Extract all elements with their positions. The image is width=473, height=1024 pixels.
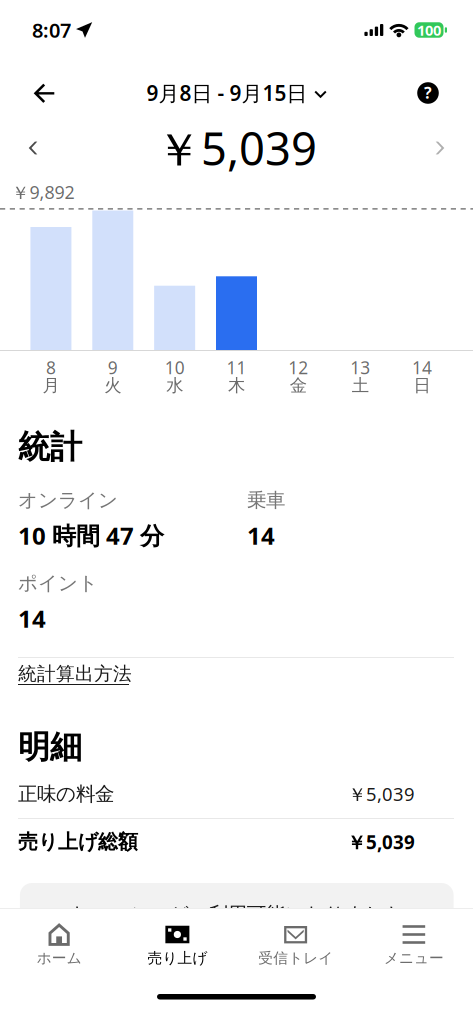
staticText: 明細 — [18, 727, 82, 767]
staticText: 14 — [247, 519, 275, 552]
button[interactable]: 統計算出方法 — [18, 662, 132, 685]
staticText: 14 — [18, 602, 46, 635]
staticText: ￥5,039 — [347, 829, 415, 855]
staticText: 売り上げ — [147, 949, 207, 967]
staticText: 木 — [228, 375, 245, 396]
staticText: 土 — [352, 375, 369, 396]
button[interactable]: 次の週 — [418, 122, 462, 174]
staticText: 金 — [290, 375, 307, 396]
staticText: 水 — [166, 375, 183, 396]
staticText: 12 — [288, 356, 308, 379]
staticText: オンライン — [18, 488, 118, 512]
staticText: 8 — [46, 356, 56, 379]
staticText: 100 — [417, 20, 441, 40]
staticText: 14 — [412, 356, 432, 379]
staticText: ポイント — [18, 571, 98, 595]
staticText: 売り上げ総額 — [18, 829, 138, 854]
staticText: 統計算出方法 — [18, 662, 132, 685]
staticText: ? — [424, 82, 432, 103]
button[interactable]: ホーム — [0, 909, 118, 979]
staticText: 10 — [165, 356, 185, 379]
staticText: 統計 — [18, 427, 82, 467]
staticText: 9 — [108, 356, 118, 379]
button[interactable]: ヘルプ — [404, 69, 452, 117]
staticText: 受信トレイ — [258, 949, 333, 967]
staticText: 9月8日 - 9月15日 — [146, 79, 307, 107]
staticText: 8:07 — [32, 16, 71, 44]
staticText: キャッシュがご利用可能になりました — [69, 902, 405, 926]
button[interactable]: 戻る — [20, 69, 68, 117]
staticText: 10 時間 47 分 — [18, 519, 164, 552]
staticText: 11 — [226, 356, 246, 379]
staticText: ￥9,892 — [11, 180, 74, 204]
button[interactable]: 前の週 — [11, 122, 55, 174]
staticText: 火 — [104, 375, 121, 396]
staticText: メニュー — [384, 949, 444, 967]
staticText: 乗車 — [247, 488, 285, 512]
staticText: 正味の料金 — [18, 782, 114, 806]
staticText: 13 — [350, 356, 370, 379]
staticText: ￥5,039 — [156, 117, 317, 179]
button[interactable]: メニュー — [355, 909, 473, 979]
staticText: ￥5,039 — [348, 781, 415, 806]
button[interactable]: 9月8日 - 9月15日 — [0, 69, 473, 117]
button[interactable]: 受信トレイ — [236, 909, 355, 979]
staticText: ホーム — [37, 949, 82, 967]
button[interactable]: 売り上げ — [118, 909, 236, 979]
staticText: 月 — [42, 375, 59, 396]
staticText: 日 — [414, 375, 431, 396]
